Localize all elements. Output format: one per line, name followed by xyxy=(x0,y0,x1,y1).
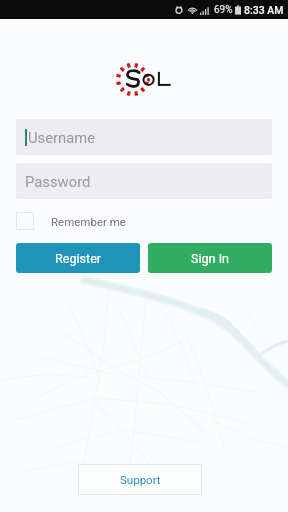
button[interactable]: Sign In xyxy=(148,243,272,273)
staticText: 8:33 AM xyxy=(244,4,284,16)
staticText: Support xyxy=(120,473,161,486)
staticText: 69% xyxy=(214,4,233,16)
staticText: Remember me xyxy=(51,215,126,228)
button[interactable]: Support xyxy=(78,464,202,495)
button[interactable]: Username xyxy=(16,119,272,155)
staticText: Sign In xyxy=(191,251,230,266)
staticText: Password xyxy=(25,173,91,190)
staticText: Username xyxy=(28,129,96,146)
staticText: Register xyxy=(55,251,102,266)
button[interactable]: Remember me xyxy=(16,208,126,234)
button[interactable]: Password xyxy=(16,163,272,199)
button[interactable]: Register xyxy=(16,243,140,273)
